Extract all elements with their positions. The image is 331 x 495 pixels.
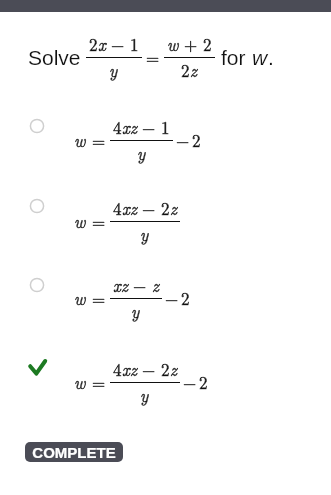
staticText: y [131, 299, 140, 323]
staticText: 2 [161, 357, 170, 381]
staticText: − [133, 273, 147, 297]
staticText: w [167, 32, 179, 56]
staticText: x [98, 32, 106, 56]
staticText: Solve [28, 46, 81, 69]
staticText: − [111, 32, 125, 56]
button[interactable]: Select this answer [29, 277, 45, 293]
staticText: y [137, 141, 146, 165]
staticText: w [74, 370, 86, 394]
staticText: y [140, 383, 149, 407]
staticText: 2 [161, 196, 170, 220]
staticText: xz [122, 196, 137, 220]
staticText: y [109, 58, 118, 82]
staticText: z [190, 58, 197, 82]
staticText: y [140, 222, 149, 246]
staticText: xz [122, 357, 137, 381]
staticText: = [92, 209, 106, 233]
staticText: = [92, 286, 106, 310]
staticText: − [183, 370, 197, 394]
button[interactable]: Select this answer [29, 198, 45, 214]
staticText: w [74, 286, 86, 310]
staticText: 2 [192, 128, 201, 152]
button[interactable]: w [0, 193, 331, 249]
staticText: y [140, 383, 149, 407]
button[interactable]: w [0, 112, 331, 168]
staticText: y [131, 299, 140, 323]
button[interactable]: COMPLETE [25, 442, 123, 462]
staticText: . [268, 46, 274, 69]
staticText: = [92, 286, 106, 310]
staticText: w [252, 46, 268, 69]
staticText: − [142, 357, 156, 381]
staticText: = [92, 128, 106, 152]
staticText: − [165, 286, 179, 310]
staticText: 4 [113, 196, 122, 220]
staticText: = [146, 45, 160, 69]
staticText: 2 [199, 370, 208, 394]
staticText: w [74, 128, 86, 152]
staticText: − [165, 286, 179, 310]
staticText: w [74, 370, 86, 394]
staticText: y [109, 58, 118, 82]
button[interactable]: w [0, 354, 331, 410]
staticText: z [170, 196, 177, 220]
staticText: xz [122, 357, 137, 381]
staticText: 4 [113, 115, 122, 139]
staticText: z [170, 357, 177, 381]
staticText: 2 [203, 32, 212, 56]
staticText: z [190, 58, 197, 82]
staticText: − [133, 273, 147, 297]
staticText: 1 [130, 32, 139, 56]
staticText: 2 [161, 196, 170, 220]
staticText: 4 [113, 196, 122, 220]
staticText: 2 [181, 286, 190, 310]
staticText: − [142, 115, 156, 139]
staticText: w [74, 128, 86, 152]
staticText: xz [113, 273, 128, 297]
staticText: 2 [181, 58, 190, 82]
staticText: z [152, 273, 159, 297]
staticText: 2 [181, 58, 190, 82]
staticText: xz [122, 115, 137, 139]
staticText: − [176, 128, 190, 152]
staticText: 2 [89, 32, 98, 56]
staticText: − [142, 196, 156, 220]
staticText: 2 [199, 370, 208, 394]
staticText: − [183, 370, 197, 394]
staticText: w [74, 209, 86, 233]
staticText: = [92, 209, 106, 233]
staticText: xz [113, 273, 128, 297]
staticText: COMPLETE [32, 444, 116, 461]
staticText: − [142, 115, 156, 139]
staticText: = [92, 370, 106, 394]
staticText: = [92, 128, 106, 152]
staticText: 2 [192, 128, 201, 152]
staticText: 1 [161, 115, 170, 139]
button[interactable]: w [0, 270, 331, 326]
staticText: y [140, 222, 149, 246]
staticText: + [184, 32, 198, 56]
staticText: = [146, 45, 160, 69]
staticText: 2 [89, 32, 98, 56]
staticText: 2 [161, 357, 170, 381]
staticText: z [152, 273, 159, 297]
staticText: w [74, 209, 86, 233]
button[interactable]: Select this answer [29, 118, 45, 134]
staticText: − [142, 196, 156, 220]
staticText: xz [122, 115, 137, 139]
staticText: 1 [161, 115, 170, 139]
staticText: 2 [181, 286, 190, 310]
staticText: z [170, 357, 177, 381]
staticText: 1 [130, 32, 139, 56]
staticText: + [184, 32, 198, 56]
staticText: 4 [113, 357, 122, 381]
staticText: − [176, 128, 190, 152]
staticText: xz [122, 196, 137, 220]
staticText: for [221, 46, 252, 69]
staticText: 4 [113, 115, 122, 139]
staticText: y [137, 141, 146, 165]
staticText: w [74, 286, 86, 310]
staticText: z [170, 196, 177, 220]
staticText: 4 [113, 357, 122, 381]
other: Correct answer [26, 356, 48, 378]
